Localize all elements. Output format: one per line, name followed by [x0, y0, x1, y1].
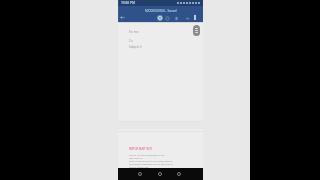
staticText: that continues to fill the page here w [129, 159, 173, 162]
button[interactable]: Delete [172, 14, 180, 22]
staticText: and keeps wrapping along the row xy [129, 162, 173, 165]
staticText: To: me [129, 30, 139, 34]
staticText: text over lin [129, 156, 143, 159]
staticText: Subject li [129, 45, 142, 49]
staticText: Cc: [129, 39, 134, 43]
staticText: until it stops hee [129, 165, 149, 168]
staticText: IMPORTANT NOT [129, 147, 153, 151]
button[interactable]: Scroll handle [193, 25, 200, 36]
button[interactable]: Search [163, 14, 171, 22]
button[interactable]: More options [191, 13, 199, 21]
button[interactable]: Send [156, 14, 164, 22]
button[interactable]: Recents [174, 169, 184, 179]
staticText: This is a short paragraph of te [129, 153, 165, 156]
button[interactable]: Home [155, 169, 165, 179]
button[interactable]: Back [118, 13, 127, 22]
staticText: 10:58 PM [121, 1, 136, 5]
button[interactable]: Attach [183, 14, 191, 22]
staticText: NXXX000004 - Saved [145, 8, 177, 12]
button[interactable]: Back [135, 169, 145, 179]
